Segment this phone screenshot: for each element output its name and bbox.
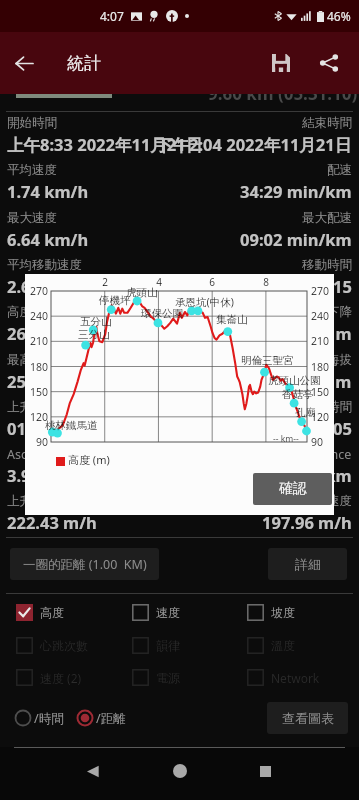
staticText: 孔廟 [295,406,316,419]
staticText: 210 [311,334,334,348]
staticText: 平均移動速度 [7,257,82,273]
staticText: 平均速度 [7,162,57,178]
staticText: 最大速度 [7,210,57,226]
staticText: 環保公園 [141,307,183,320]
staticText: 272 m [303,322,352,344]
staticText: 3.94 km [7,464,71,486]
staticText: Descent Distance [250,446,352,463]
button[interactable]: Back [69,747,117,795]
button[interactable]: 心跳次數 [16,637,88,654]
staticText: 90 [25,435,48,449]
button[interactable]: /距離 [76,709,126,727]
staticText: 三分山 [78,328,110,341]
staticText: 最高海拔 [7,352,57,368]
button[interactable]: Share [305,39,353,87]
staticText: 222.43 m/h [7,511,97,533]
staticText: 開始時間 [7,115,57,131]
staticText: -- km-- [273,433,299,445]
staticText: 高度 [40,605,64,620]
staticText: 259 m [7,370,56,392]
staticText: 明倫三聖宮 [241,354,294,367]
staticText: /距離 [96,710,126,727]
staticText: 移動時間 [302,257,352,273]
staticText: 下降速度 [302,493,352,509]
button[interactable]: 速度 (2) [16,669,82,686]
button[interactable]: /時間 [14,709,64,727]
staticText: 89 m [312,370,352,392]
staticText: 240 [25,309,48,323]
staticText: 4:07 [100,8,124,24]
staticText: 09:02 min/km [240,228,352,250]
staticText: 桃林鐵馬道 [45,419,98,432]
button[interactable]: Recents [241,747,289,795]
staticText: 4.11 km [288,464,352,486]
button[interactable]: 電源 [132,669,180,686]
staticText: 集崙山 [216,313,248,326]
staticText: 8 [260,275,272,289]
staticText: 150 [25,385,48,399]
staticText: 虎頭山 [126,286,158,299]
staticText: 上升速度 [7,493,57,509]
staticText: 最大配速 [302,210,352,226]
staticText: 90 [311,435,334,449]
staticText: 上午8:33 2022年11月21日 [7,133,203,156]
staticText: 統計 [67,53,101,74]
staticText: 下午2:04 2022年11月21日 [156,133,352,156]
staticText: 260 m [7,322,56,344]
button[interactable]: Network [247,669,320,686]
staticText: 五分山 [80,315,112,328]
staticText: 停機坪 [99,294,131,307]
staticText: 270 [311,284,334,298]
staticText: 9.60 km (05:31:10) [208,82,358,105]
staticText: 坡度 [271,605,295,620]
staticText: 2.60 km/h [7,275,89,297]
staticText: 最低海拔 [302,352,352,368]
button[interactable]: 查看圖表 [267,702,348,734]
staticText: 電源 [156,670,180,685]
button[interactable]: Home [156,747,204,795]
staticText: 高度 (m) [68,452,110,467]
staticText: 韻律 [156,638,180,653]
button[interactable]: Back [0,39,48,87]
staticText: 270 [25,284,48,298]
staticText: 46% [327,8,351,24]
staticText: 速度 (2) [40,670,82,686]
staticText: 虎頭山公園 [268,374,321,387]
staticText: 一圈的距離 (1.00 KM) [23,556,147,573]
staticText: 高度下降 [302,304,352,320]
button[interactable]: 坡度 [247,604,295,621]
staticText: 6.64 km/h [7,228,89,250]
staticText: 01:32:18 [7,417,73,439]
button[interactable]: 速度 [132,604,180,621]
button[interactable]: 高度 [16,604,64,621]
staticText: 配速 [327,162,352,178]
staticText: 34:29 min/km [240,180,352,202]
button[interactable]: 確認 [253,473,332,505]
staticText: 心跳次數 [40,638,88,653]
staticText: Ascent Distance [7,446,101,463]
staticText: 溫度 [271,638,295,653]
staticText: 詳細 [295,556,321,572]
staticText: 120 [25,410,48,424]
button[interactable]: 韻律 [132,637,180,654]
button[interactable]: 詳細 [268,548,347,580]
staticText: 速度 [156,605,180,620]
staticText: 4 [153,275,165,289]
staticText: 承恩坑(中休) [175,295,234,309]
button[interactable]: 一圈的距離 (1.00 KM) [10,548,159,580]
staticText: 6 [206,275,218,289]
staticText: 197.96 m/h [262,511,352,533]
staticText: 下降時間 [302,399,352,415]
staticText: 1.74 km/h [7,180,89,202]
staticText: 240 [311,309,334,323]
staticText: 2 [99,275,111,289]
staticText: 03:41:15 [286,275,352,297]
staticText: 180 [25,360,48,374]
staticText: 150 [311,385,334,399]
staticText: 高度上升 [7,304,57,320]
staticText: 120 [311,410,334,424]
button[interactable]: 溫度 [247,637,295,654]
staticText: Network [271,670,320,686]
button[interactable]: Save [257,39,305,87]
staticText: 180 [311,360,334,374]
